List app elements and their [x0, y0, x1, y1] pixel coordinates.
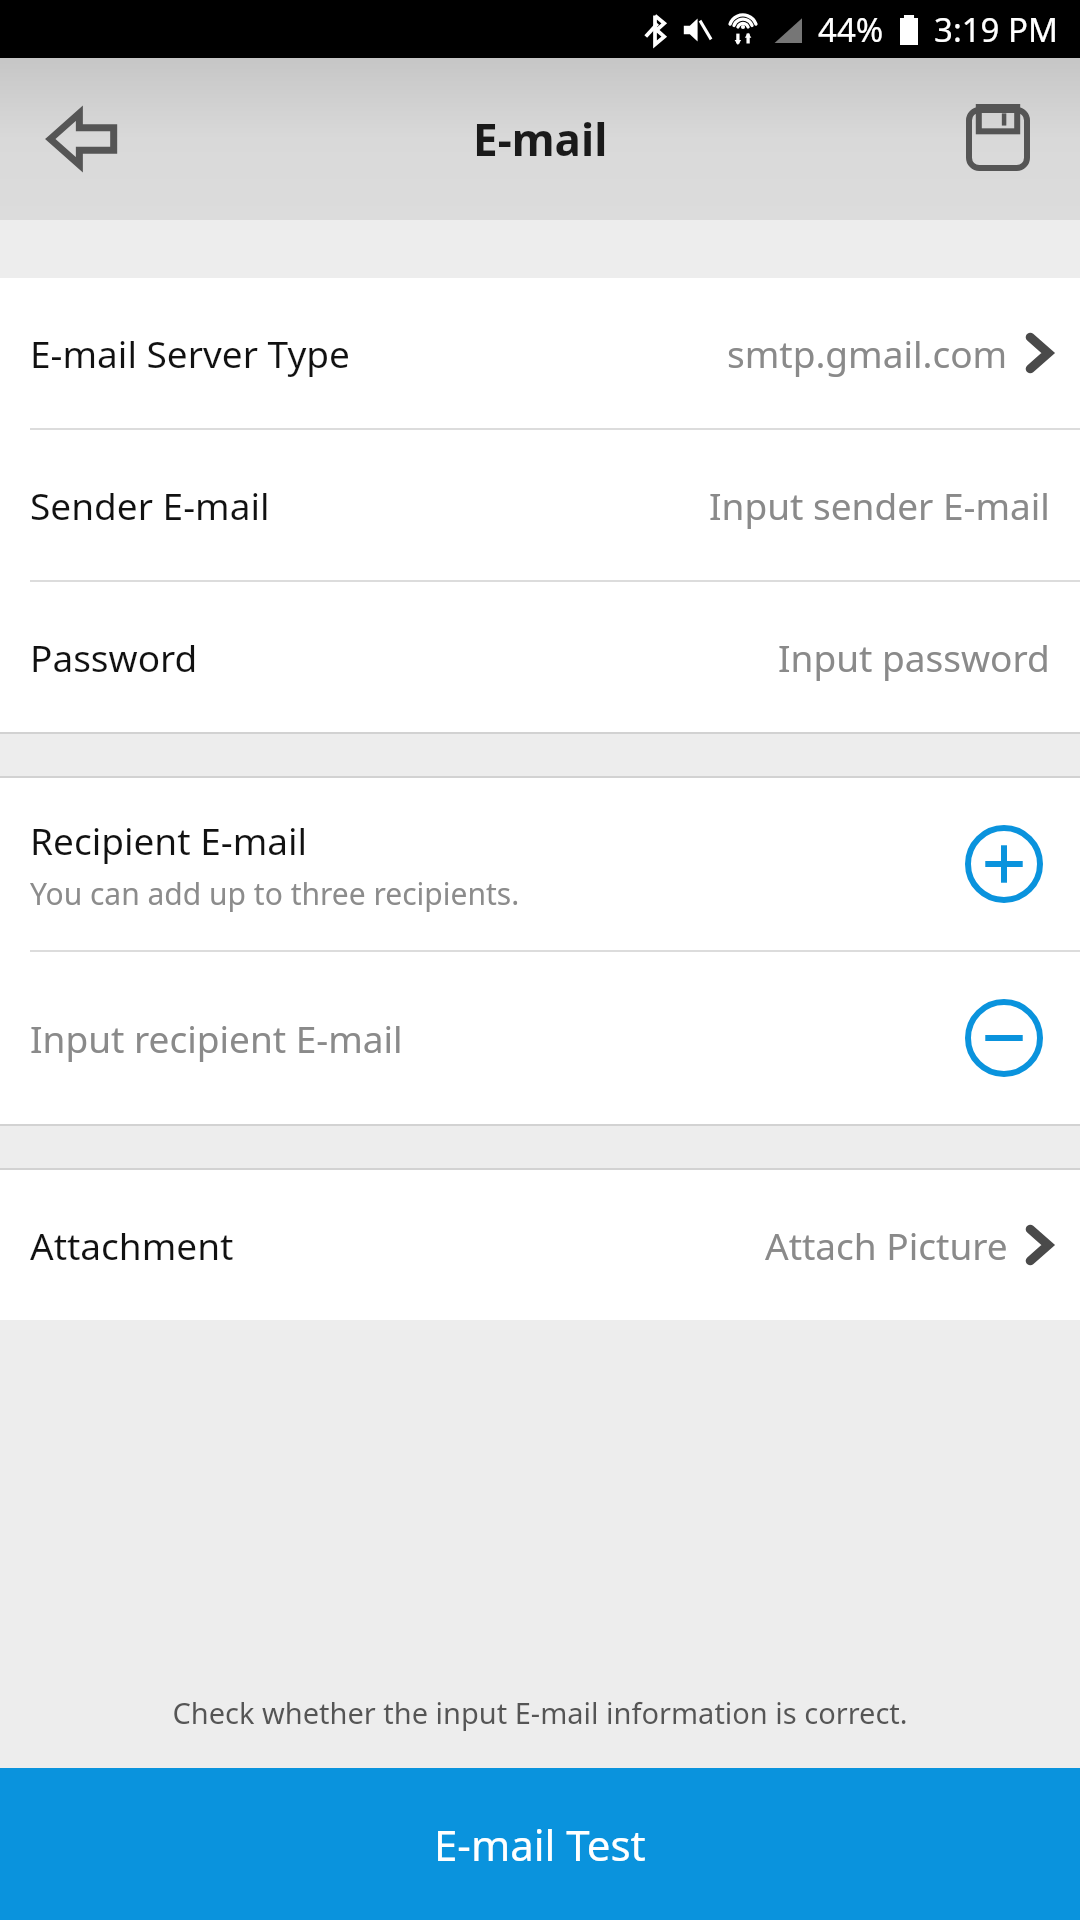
- staticText: Input recipient E-mail: [30, 1013, 958, 1063]
- staticText: E-mail: [473, 109, 608, 169]
- button[interactable]: Remove recipient: [958, 992, 1050, 1084]
- staticText: Attachment: [30, 1220, 234, 1270]
- button[interactable]: Attachment: [0, 1170, 1080, 1320]
- staticText: E-mail Test: [434, 1816, 646, 1873]
- button[interactable]: Sender E-mail: [0, 430, 1080, 580]
- button[interactable]: Add recipient: [958, 818, 1050, 910]
- button[interactable]: Recipient E-mail: [0, 778, 1080, 950]
- staticText: E-mail Server Type: [30, 328, 350, 378]
- button[interactable]: E-mail Test: [0, 1768, 1080, 1920]
- button[interactable]: Input recipient E-mail: [0, 952, 1080, 1124]
- button[interactable]: Back: [30, 87, 134, 191]
- staticText: Password: [30, 632, 198, 682]
- staticText: Recipient E-mail: [30, 815, 308, 865]
- staticText: Input sender E-mail: [709, 480, 1050, 530]
- staticText: Sender E-mail: [30, 480, 270, 530]
- staticText: Input password: [778, 632, 1050, 682]
- button[interactable]: Save: [946, 87, 1050, 191]
- button[interactable]: E-mail Server Type: [0, 278, 1080, 428]
- staticText: 3:19 PM: [934, 7, 1058, 52]
- staticText: Check whether the input E-mail informati…: [0, 1693, 1080, 1732]
- staticText: smtp.gmail.com: [727, 328, 1008, 378]
- staticText: Attach Picture: [765, 1220, 1008, 1270]
- staticText: 44%: [818, 7, 884, 52]
- button[interactable]: Password: [0, 582, 1080, 732]
- staticText: You can add up to three recipients.: [30, 873, 520, 914]
